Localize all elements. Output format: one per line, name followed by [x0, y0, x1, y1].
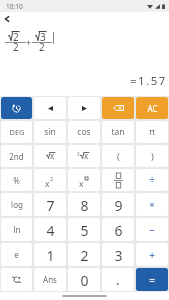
button[interactable]: +	[136, 243, 168, 266]
button[interactable]: ÷	[136, 169, 168, 191]
button[interactable]: Convert	[1, 268, 32, 291]
staticText: 6	[114, 221, 123, 240]
button[interactable]: 2	[68, 243, 100, 266]
staticText: 3	[40, 30, 46, 44]
button[interactable]: Fraction	[102, 169, 134, 191]
button[interactable]: cos	[68, 121, 100, 143]
button[interactable]: 3	[68, 145, 100, 167]
button[interactable]: 8	[68, 193, 100, 216]
button[interactable]: )	[136, 145, 168, 167]
staticText: +	[26, 36, 32, 48]
button[interactable]: 7	[34, 193, 66, 216]
staticText: )	[151, 150, 154, 163]
staticText: =	[149, 273, 155, 287]
button[interactable]: 2nd	[1, 145, 32, 167]
staticText: ×	[149, 198, 155, 211]
staticText: tan	[111, 126, 125, 138]
staticText: 8	[80, 196, 89, 215]
staticText: x	[45, 178, 50, 187]
staticText: DEG	[9, 127, 25, 137]
staticText: AC	[147, 103, 158, 114]
button[interactable]: 3	[102, 243, 134, 266]
button[interactable]: Backspace	[102, 97, 134, 119]
staticText: x	[50, 150, 55, 160]
button[interactable]: e	[1, 243, 32, 266]
button[interactable]: π	[136, 121, 168, 143]
staticText: 2	[50, 175, 54, 182]
staticText: (	[117, 150, 120, 163]
staticText: 2nd	[9, 151, 24, 162]
staticText: 0	[80, 271, 89, 290]
staticText: 5	[80, 221, 89, 240]
staticText: 3	[77, 151, 80, 157]
button[interactable]: log	[1, 193, 32, 216]
button[interactable]: 1	[34, 243, 66, 266]
button[interactable]: x	[34, 145, 66, 167]
staticText: 2	[13, 40, 19, 54]
staticText: log	[11, 199, 23, 210]
staticText: .	[116, 270, 120, 289]
button[interactable]: 5	[68, 218, 100, 241]
staticText: Ans	[43, 274, 57, 285]
staticText: 1	[46, 246, 55, 265]
button[interactable]: %	[1, 169, 32, 191]
button[interactable]: x	[34, 169, 66, 191]
staticText: cos	[77, 126, 91, 138]
button[interactable]: sin	[34, 121, 66, 143]
staticText: 2	[13, 30, 19, 44]
staticText: π	[149, 126, 155, 138]
button[interactable]: Ans	[34, 268, 66, 291]
button[interactable]: ln	[1, 218, 32, 241]
button[interactable]: Back	[0, 12, 13, 25]
staticText: x	[84, 150, 89, 160]
button[interactable]: =	[136, 268, 168, 291]
staticText: x	[79, 178, 84, 187]
button[interactable]: −	[136, 218, 168, 241]
button[interactable]: .	[102, 268, 134, 291]
staticText: ÷	[149, 173, 155, 187]
staticText: 10:10	[6, 2, 23, 11]
staticText: 7	[46, 196, 55, 215]
staticText: +	[149, 248, 155, 262]
button[interactable]: Move right	[68, 97, 100, 119]
staticText: e	[14, 249, 19, 260]
button[interactable]: Move left	[34, 97, 66, 119]
staticText: 3	[114, 246, 123, 265]
button[interactable]: ×	[136, 193, 168, 216]
button[interactable]: DEG	[1, 121, 32, 143]
staticText: sin	[44, 126, 56, 138]
staticText: 2	[80, 246, 89, 265]
staticText: 2	[39, 40, 45, 54]
staticText: ln	[13, 224, 21, 235]
button[interactable]: AC	[136, 97, 168, 119]
button[interactable]: 4	[34, 218, 66, 241]
button[interactable]: x	[68, 169, 100, 191]
staticText: %	[13, 175, 20, 186]
staticText: =1.57	[130, 73, 167, 89]
button[interactable]: (	[102, 145, 134, 167]
button[interactable]: 0	[68, 268, 100, 291]
staticText: 4	[46, 221, 55, 240]
button[interactable]: History	[1, 97, 32, 119]
button[interactable]: tan	[102, 121, 134, 143]
staticText: 9	[114, 196, 123, 215]
button[interactable]: 9	[102, 193, 134, 216]
button[interactable]: 6	[102, 218, 134, 241]
staticText: −	[149, 223, 155, 237]
